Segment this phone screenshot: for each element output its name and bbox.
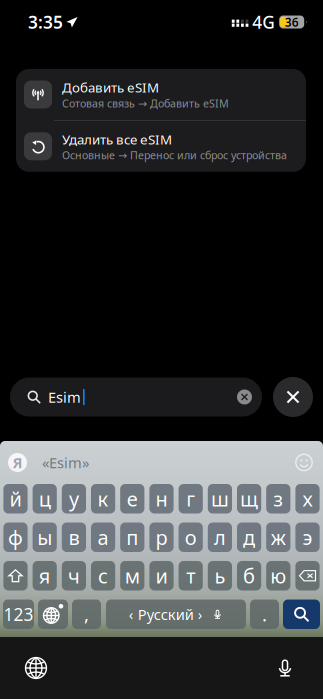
button[interactable]: г — [179, 484, 203, 513]
button[interactable]: д — [237, 522, 261, 552]
button[interactable]: т — [179, 561, 203, 590]
button[interactable]: е — [120, 484, 144, 513]
button[interactable]: 123 — [3, 599, 34, 629]
staticText: 123 — [3, 603, 33, 626]
button[interactable]: Удалить все eSIM — [16, 121, 306, 172]
staticText: , — [84, 602, 89, 627]
button[interactable]: Shift — [3, 561, 28, 590]
staticText: а — [98, 524, 109, 551]
staticText: к — [98, 485, 109, 512]
staticText: ф — [8, 524, 23, 551]
staticText: р — [155, 524, 167, 551]
staticText: щ — [240, 485, 258, 512]
button[interactable]: л — [208, 522, 232, 552]
button[interactable]: й — [3, 484, 28, 513]
staticText: х — [302, 485, 312, 512]
button[interactable]: ч — [62, 561, 86, 590]
staticText: 36 — [285, 14, 299, 30]
button[interactable]: и — [149, 561, 174, 590]
staticText: б — [243, 562, 255, 589]
button[interactable]: р — [149, 522, 174, 552]
staticText: н — [155, 485, 167, 512]
staticText: п — [126, 524, 138, 551]
staticText: з — [273, 485, 283, 512]
button[interactable]: ‹ Русский › — [106, 599, 246, 629]
button[interactable]: Search — [283, 599, 320, 629]
staticText: с — [98, 562, 108, 589]
button[interactable]: я — [33, 561, 57, 590]
staticText: й — [9, 485, 21, 512]
button[interactable]: ж — [266, 522, 290, 552]
button[interactable]: щ — [237, 484, 261, 513]
staticText: д — [243, 524, 255, 551]
staticText: ю — [270, 562, 286, 589]
staticText: Я — [12, 453, 22, 472]
staticText: г — [186, 485, 195, 512]
button[interactable]: к — [91, 484, 115, 513]
button[interactable]: п — [120, 522, 144, 552]
staticText: э — [302, 524, 312, 551]
button[interactable]: ц — [33, 484, 57, 513]
staticText: м — [125, 562, 140, 589]
staticText: о — [185, 524, 197, 551]
staticText: Сотовая связь → Добавить eSIM — [62, 96, 229, 110]
button[interactable]: ы — [33, 522, 57, 552]
staticText: ч — [68, 562, 80, 589]
staticText: и — [155, 562, 167, 589]
staticText: ш — [211, 485, 229, 512]
button[interactable]: с — [91, 561, 115, 590]
button[interactable]: Globe — [14, 646, 58, 690]
button[interactable]: Delete — [295, 561, 320, 590]
button[interactable]: Close search — [273, 377, 313, 417]
button[interactable]: н — [149, 484, 174, 513]
staticText: у — [69, 485, 79, 512]
button[interactable]: Добавить eSIM — [16, 69, 306, 120]
button[interactable]: о — [179, 522, 203, 552]
button[interactable]: б — [237, 561, 261, 590]
staticText: в — [68, 524, 79, 551]
button[interactable]: з — [266, 484, 290, 513]
button[interactable]: Next keyboard — [38, 599, 68, 629]
button[interactable]: ф — [3, 522, 28, 552]
button[interactable]: а — [91, 522, 115, 552]
button[interactable]: . — [250, 599, 279, 629]
button[interactable]: Clear text — [237, 389, 252, 404]
staticText: Добавить eSIM — [62, 79, 159, 96]
button[interactable]: э — [295, 522, 320, 552]
button[interactable]: ш — [208, 484, 232, 513]
staticText: Esim — [48, 387, 81, 407]
staticText: 4G — [252, 10, 275, 33]
button[interactable]: у — [62, 484, 86, 513]
staticText: Удалить все eSIM — [62, 130, 172, 148]
button[interactable]: , — [72, 599, 101, 629]
button[interactable]: в — [62, 522, 86, 552]
staticText: Основные → Перенос или сброс устройства — [62, 148, 287, 162]
staticText: ц — [39, 485, 51, 512]
button[interactable]: Dictation — [263, 646, 307, 690]
staticText: ы — [37, 524, 52, 551]
staticText: л — [214, 524, 226, 551]
staticText: т — [186, 562, 195, 589]
button[interactable]: ь — [208, 561, 232, 590]
button[interactable]: х — [295, 484, 320, 513]
staticText: я — [39, 562, 51, 589]
staticText: ж — [271, 524, 286, 551]
button[interactable]: ю — [266, 561, 290, 590]
button[interactable]: м — [120, 561, 144, 590]
staticText: ь — [214, 562, 225, 589]
staticText: е — [127, 485, 138, 512]
staticText: ‹ Русский › — [129, 604, 203, 624]
staticText: . — [262, 602, 267, 627]
staticText: 3:35 — [28, 10, 63, 33]
staticText: «Esim» — [42, 453, 89, 472]
